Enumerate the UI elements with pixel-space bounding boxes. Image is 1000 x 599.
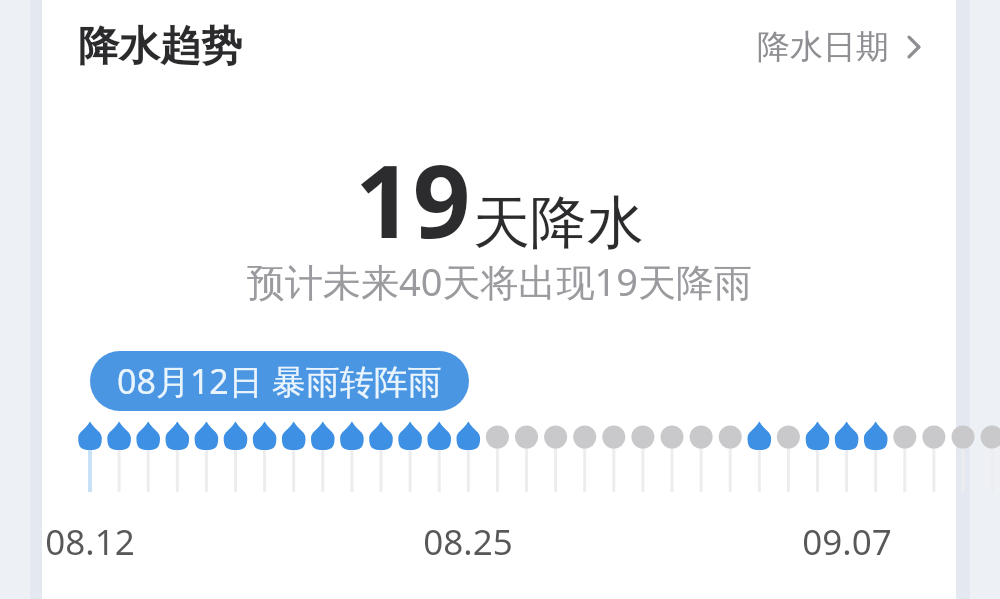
staticText: 09.07 <box>802 518 892 566</box>
staticText: 预计未来40天将出现19天降雨 <box>247 255 752 307</box>
other: 查看降水日期 <box>904 30 924 64</box>
button[interactable]: 降水趋势 <box>78 21 242 73</box>
staticText: 天降水 <box>473 187 644 259</box>
button[interactable]: 未来40天降水趋势图 <box>42 345 956 515</box>
staticText: 08.25 <box>423 518 513 566</box>
staticText: 19 <box>355 130 471 268</box>
button[interactable]: 08月12日 暴雨转阵雨 <box>90 351 469 411</box>
staticText: 08月12日 暴雨转阵雨 <box>117 358 442 404</box>
staticText: 降水日期 <box>757 26 889 68</box>
staticText: 08.12 <box>45 518 135 566</box>
button[interactable]: 降水日期 <box>753 20 928 74</box>
